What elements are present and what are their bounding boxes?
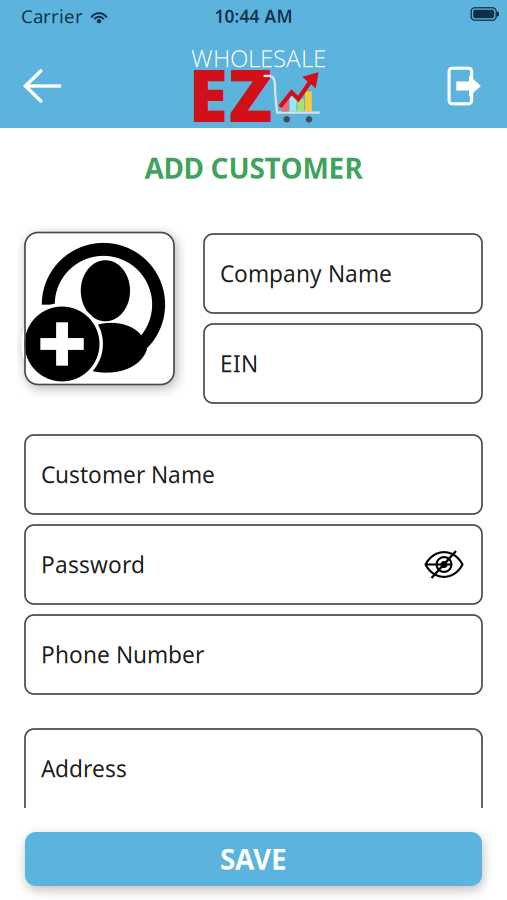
button[interactable]: SAVE	[25, 832, 482, 886]
button[interactable]: Company Name	[204, 234, 482, 313]
staticText: Password	[41, 549, 145, 579]
button[interactable]: Back	[0, 43, 86, 129]
button[interactable]: Log out	[421, 43, 507, 129]
staticText: EIN	[220, 348, 258, 378]
staticText: Address	[41, 753, 127, 783]
staticText: ADD CUSTOMER	[144, 149, 362, 187]
button[interactable]: Address	[25, 729, 482, 808]
button[interactable]: Customer Name	[25, 435, 482, 514]
staticText: Company Name	[220, 258, 392, 288]
button[interactable]: EIN	[204, 324, 482, 403]
staticText: Phone Number	[41, 639, 204, 669]
staticText: EZ	[188, 46, 272, 142]
button[interactable]: Password	[25, 525, 482, 604]
staticText: Customer Name	[41, 459, 215, 489]
staticText: 10:44 AM	[214, 4, 292, 27]
button[interactable]: Phone Number	[25, 615, 482, 694]
staticText: Carrier	[21, 4, 83, 28]
staticText: SAVE	[220, 840, 287, 878]
button[interactable]: Add customer photo	[25, 232, 174, 384]
staticText: WHOLESALE	[191, 42, 326, 74]
